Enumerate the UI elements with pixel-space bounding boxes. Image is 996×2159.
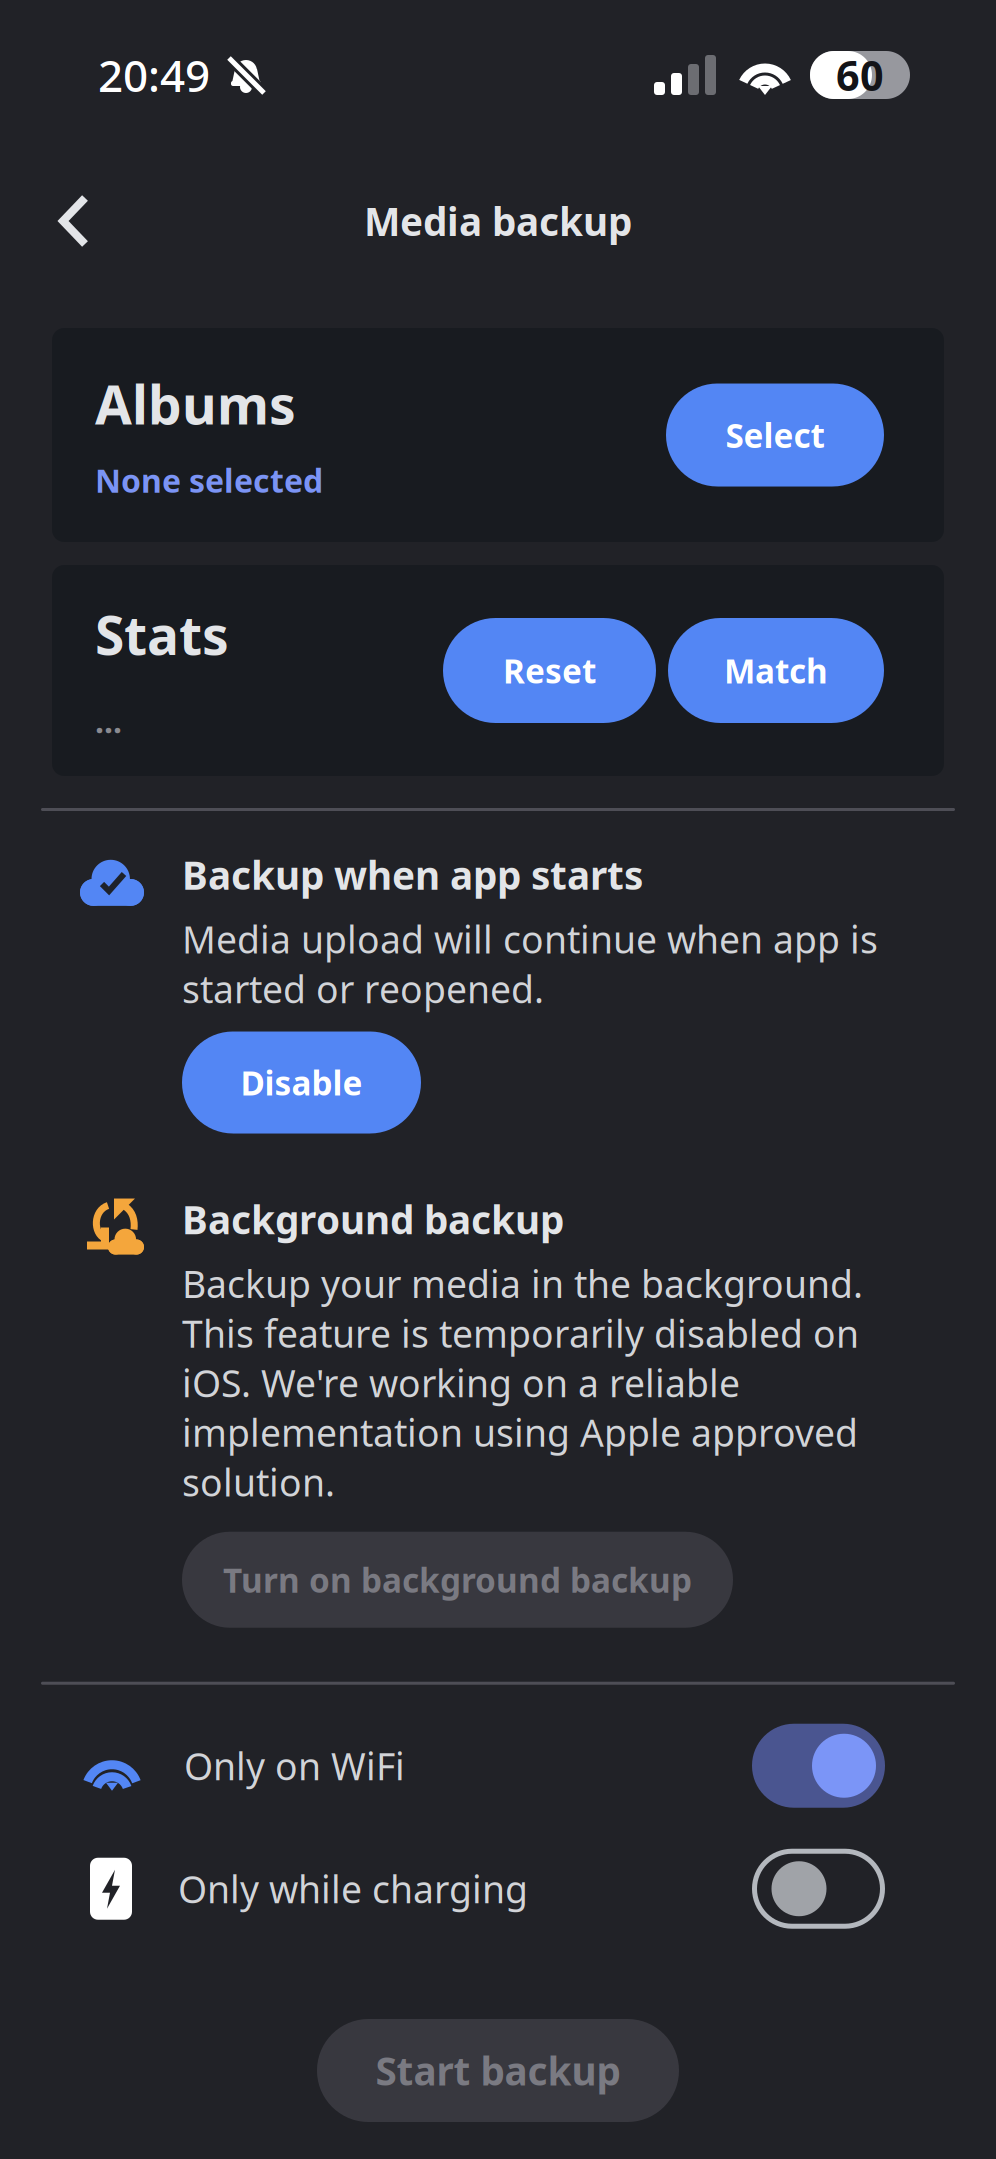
staticText: Backup your media in the background. Thi… [182, 1259, 863, 1507]
staticText: Start backup [375, 2045, 620, 2096]
staticText: Match [724, 648, 828, 693]
staticText: Stats [95, 599, 229, 670]
button[interactable]: Turn on background backup [182, 1532, 733, 1628]
staticText: Select [725, 413, 824, 457]
staticText: Media backup [364, 195, 632, 247]
staticText: Turn on background backup [223, 1558, 692, 1602]
button[interactable]: Only on WiFi [0, 1711, 996, 1821]
staticText: Media upload will continue when app is s… [182, 914, 878, 1013]
staticText: Only on WiFi [184, 1741, 405, 1790]
button[interactable]: Reset [443, 618, 656, 723]
button[interactable]: Match [668, 618, 884, 723]
button[interactable]: Start backup [317, 2019, 679, 2122]
button[interactable]: Select [666, 383, 884, 486]
button[interactable]: Disable [182, 1031, 421, 1133]
staticText: 60 [836, 48, 884, 102]
button[interactable]: Only while charging [0, 1834, 996, 1944]
staticText: Reset [503, 648, 596, 693]
staticText: Disable [240, 1060, 362, 1105]
staticText: Albums [95, 368, 296, 439]
button[interactable]: Back [36, 179, 112, 263]
staticText: ... [95, 700, 122, 742]
staticText: None selected [95, 459, 323, 502]
staticText: Background backup [182, 1193, 564, 1245]
staticText: Only while charging [178, 1864, 528, 1913]
staticText: 20:49 [98, 46, 210, 104]
staticText: Backup when app starts [182, 849, 643, 900]
